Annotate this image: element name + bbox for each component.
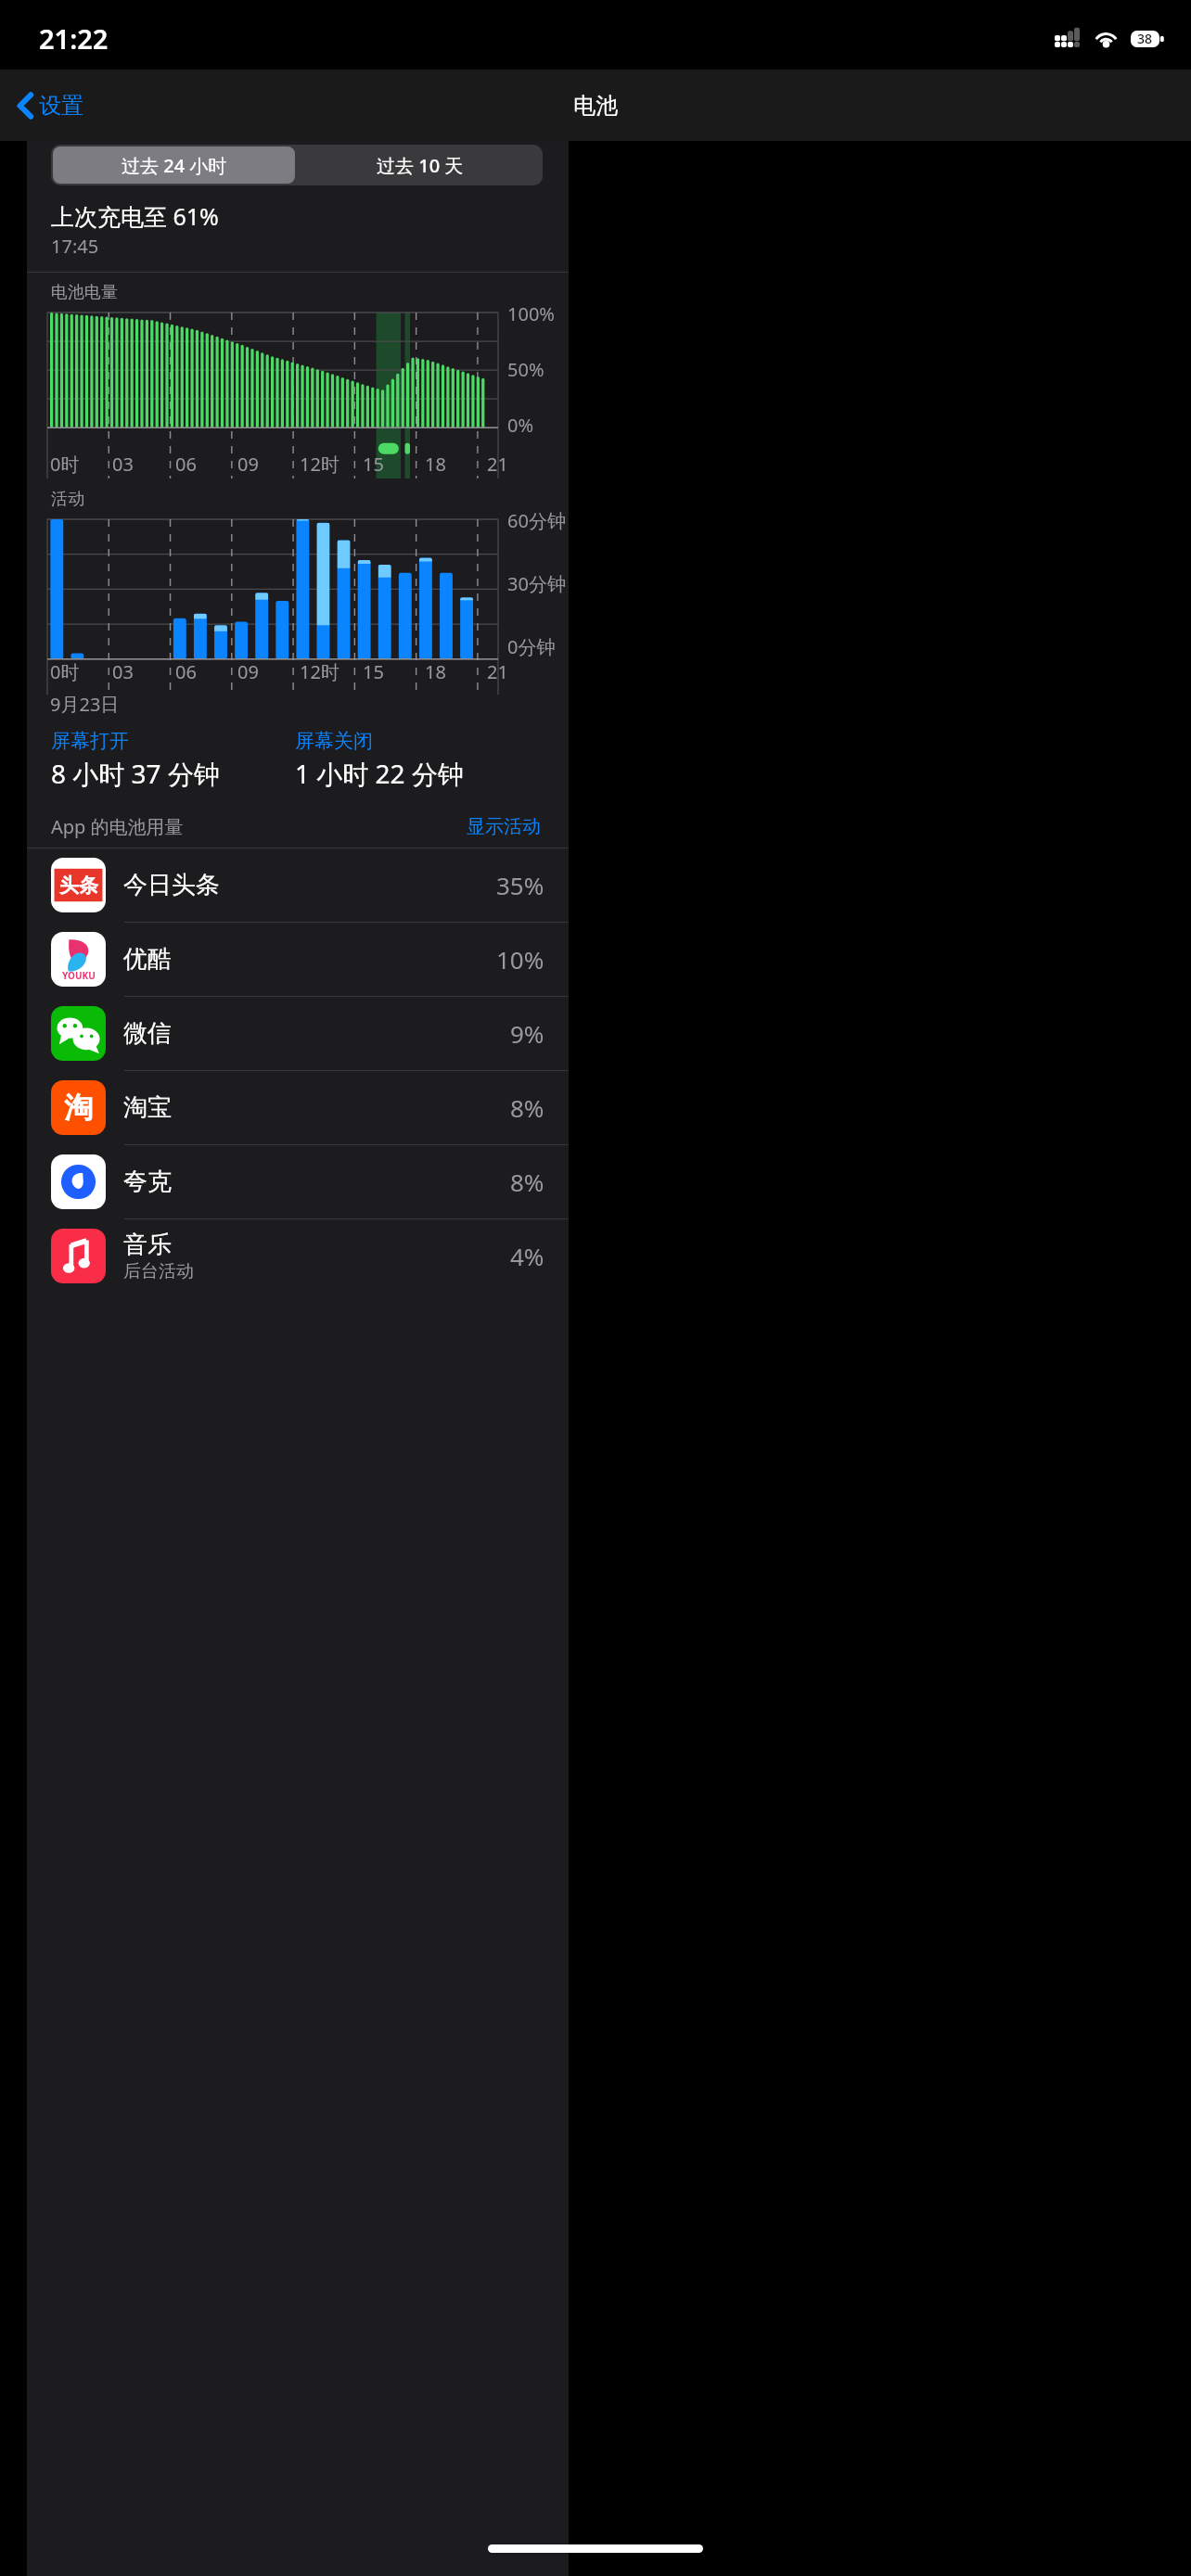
staticText: 8%	[510, 1166, 544, 1198]
staticText: 03	[112, 452, 134, 477]
staticText: 12时	[300, 659, 339, 684]
staticText: 9月23日	[50, 692, 120, 717]
button[interactable]: 淘	[27, 1071, 569, 1144]
staticText: 18	[425, 659, 446, 684]
staticText: 17:45	[51, 234, 99, 259]
staticText: 09	[237, 452, 259, 477]
staticText: 21	[487, 452, 508, 477]
staticText: 15	[363, 452, 384, 477]
staticText: 15	[363, 659, 384, 684]
staticText: 100%	[507, 301, 555, 326]
staticText: 09	[237, 659, 259, 684]
staticText: 显示活动	[467, 815, 541, 838]
button[interactable]: 设置	[15, 84, 87, 127]
staticText: 过去 10 天	[377, 153, 464, 178]
staticText: YOUKU	[62, 969, 96, 982]
staticText: 21	[487, 659, 508, 684]
staticText: 4%	[510, 1240, 544, 1272]
staticText: 上次充电至 61%	[51, 200, 219, 232]
staticText: 06	[175, 659, 197, 684]
button[interactable]: 音乐	[27, 1219, 569, 1293]
button[interactable]: 过去 24 小时	[53, 147, 295, 184]
staticText: 0时	[50, 659, 80, 684]
staticText: 头条	[59, 874, 98, 898]
staticText: 9%	[510, 1017, 544, 1050]
staticText: 10%	[496, 943, 544, 976]
staticText: 音乐	[123, 1230, 172, 1260]
staticText: 屏幕关闭	[295, 729, 373, 753]
staticText: 淘宝	[123, 1092, 172, 1123]
button[interactable]: YOUKU	[27, 923, 569, 996]
staticText: 0%	[507, 413, 534, 438]
staticText: 38	[1137, 30, 1153, 47]
staticText: App 的电池用量	[51, 814, 184, 839]
staticText: 30分钟	[507, 571, 566, 596]
button[interactable]: 过去 10 天	[297, 145, 543, 185]
staticText: 18	[425, 452, 446, 477]
button[interactable]: 微信	[27, 997, 569, 1070]
staticText: 设置	[39, 92, 83, 120]
staticText: 过去 24 小时	[122, 153, 227, 178]
staticText: 50%	[507, 357, 544, 382]
staticText: 8 小时 37 分钟	[51, 756, 220, 791]
button[interactable]: 头条	[27, 848, 569, 922]
staticText: 0分钟	[507, 634, 556, 659]
staticText: 21:22	[39, 20, 109, 57]
staticText: 今日头条	[123, 870, 220, 900]
staticText: 12时	[300, 452, 339, 477]
staticText: 屏幕打开	[51, 729, 129, 753]
staticText: 活动	[51, 489, 84, 510]
staticText: 后台活动	[123, 1260, 194, 1282]
staticText: 35%	[496, 869, 544, 901]
staticText: 1 小时 22 分钟	[295, 756, 464, 791]
staticText: 夸克	[123, 1167, 172, 1197]
staticText: 06	[175, 452, 197, 477]
staticText: 电池电量	[51, 282, 118, 303]
staticText: 03	[112, 659, 134, 684]
staticText: 8%	[510, 1091, 544, 1124]
staticText: 60分钟	[507, 508, 566, 533]
staticText: 微信	[123, 1018, 172, 1049]
staticText: 电池	[573, 92, 618, 120]
button[interactable]: 夸克	[27, 1145, 569, 1218]
staticText: 淘	[64, 1090, 93, 1126]
button[interactable]: 显示活动	[463, 811, 544, 842]
staticText: 优酷	[123, 944, 172, 975]
staticText: 0时	[50, 452, 80, 477]
